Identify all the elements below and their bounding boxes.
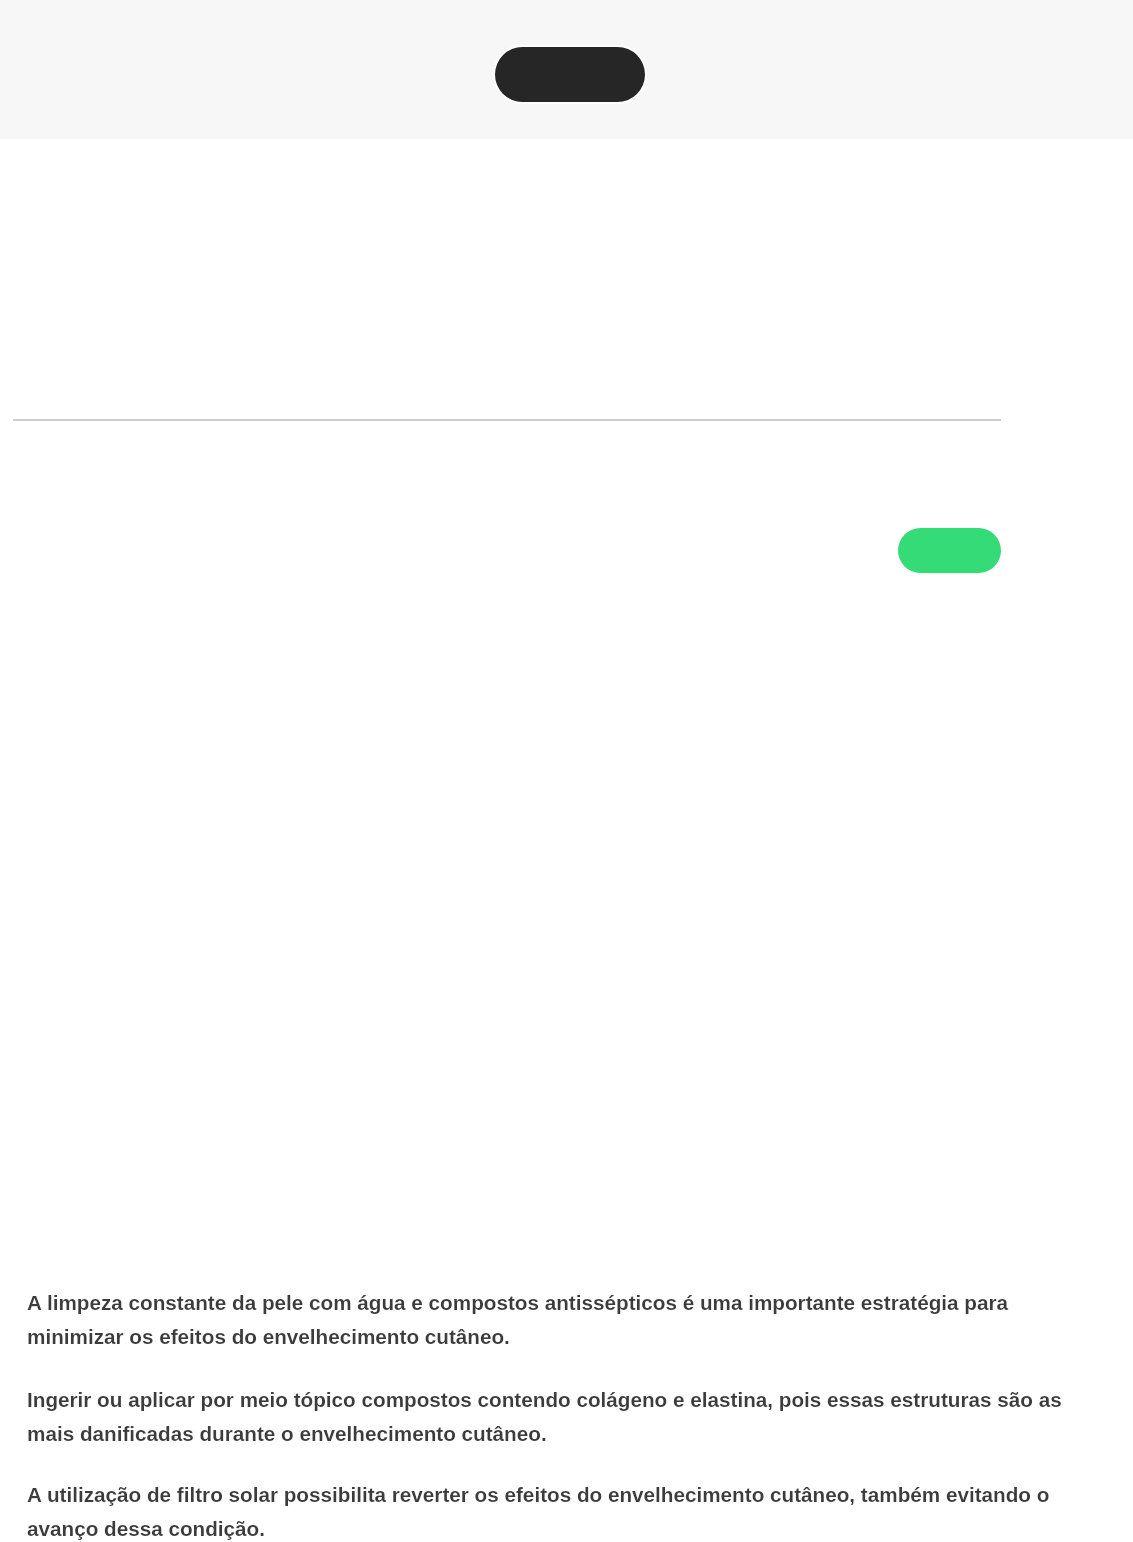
staticText: Ingerir ou aplicar por meio tópico compo… bbox=[27, 1380, 1106, 1448]
staticText: A limpeza constante da pele com água e c… bbox=[27, 1283, 1106, 1351]
button[interactable]: Continue bbox=[898, 528, 1001, 573]
staticText: A utilização de filtro solar possibilita… bbox=[27, 1475, 1106, 1542]
button[interactable]: Menu bbox=[493, 45, 647, 104]
